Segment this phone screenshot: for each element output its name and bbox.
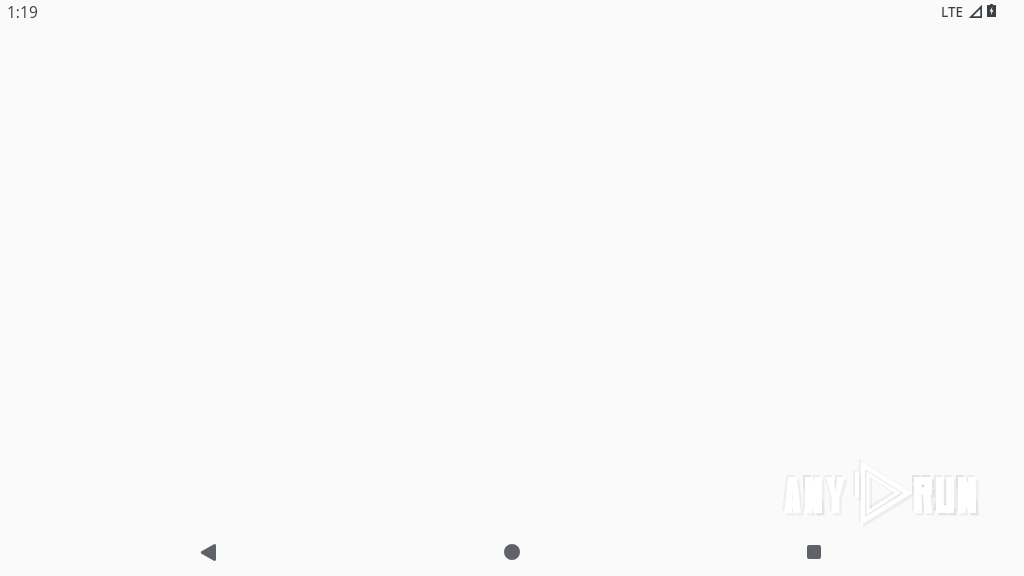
button[interactable]: Home [488, 528, 536, 576]
staticText: 1:19 [7, 1, 38, 22]
button[interactable]: Back [184, 528, 232, 576]
staticText: LTE [941, 3, 964, 21]
button[interactable]: Recent apps [790, 528, 838, 576]
